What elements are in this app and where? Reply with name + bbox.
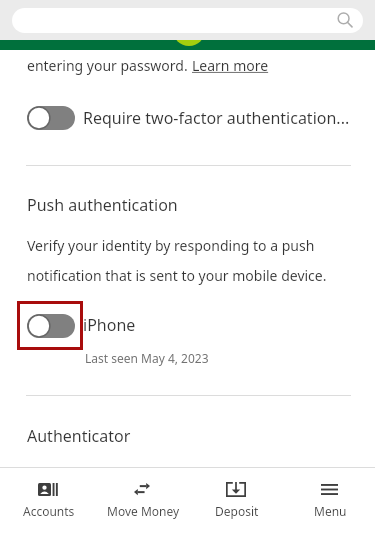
- button[interactable]: Require two-factor authentication...: [83, 107, 350, 129]
- button[interactable]: Enable push authentication for iPhone: [27, 314, 75, 338]
- staticText: Last seen May 4, 2023: [85, 350, 209, 366]
- button[interactable]: Accounts: [0, 468, 94, 535]
- button[interactable]: Search: [12, 8, 363, 33]
- button[interactable]: Require two-factor authentication: [27, 106, 75, 130]
- button[interactable]: Move Money: [94, 468, 188, 535]
- staticText: Authenticator: [27, 425, 131, 447]
- staticText: Deposit: [215, 503, 259, 519]
- staticText: entering your password.: [27, 56, 192, 75]
- button[interactable]: Deposit: [188, 468, 282, 535]
- staticText: Move Money: [107, 503, 180, 519]
- button[interactable]: Learn more: [192, 56, 269, 75]
- button[interactable]: Menu: [282, 468, 375, 535]
- staticText: Accounts: [23, 503, 75, 519]
- staticText: Menu: [314, 503, 347, 519]
- button[interactable]: iPhone: [83, 314, 136, 336]
- staticText: Push authentication: [27, 194, 178, 216]
- staticText: Verify your identity by responding to a …: [27, 236, 339, 285]
